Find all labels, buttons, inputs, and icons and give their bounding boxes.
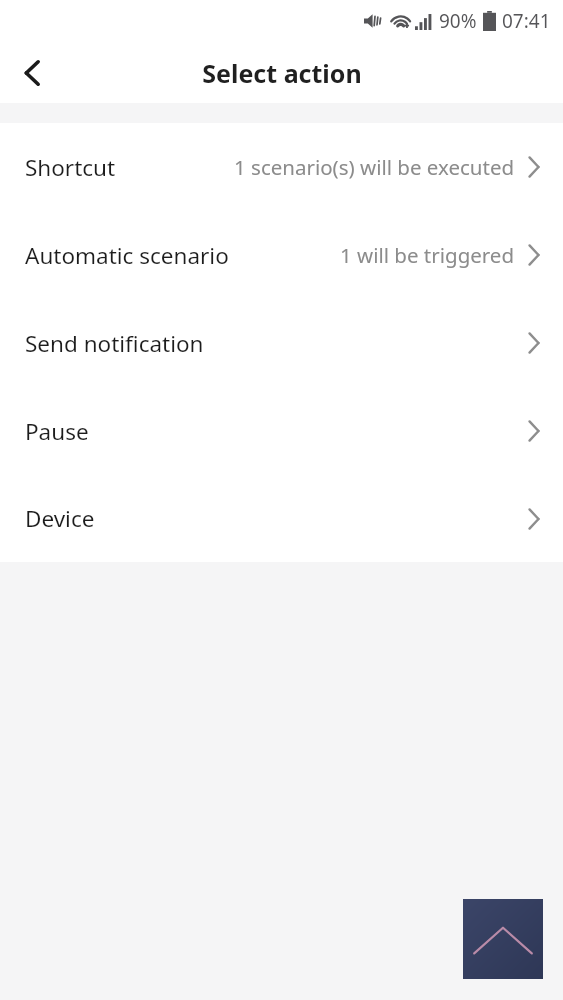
staticText: 1 scenario(s) will be executed — [234, 153, 515, 181]
staticText: 1 will be triggered — [340, 241, 515, 269]
staticText: Send notification — [25, 328, 204, 359]
button[interactable]: Navigate up — [463, 899, 543, 979]
button[interactable]: Back — [0, 42, 64, 103]
staticText: Pause — [25, 416, 89, 447]
button[interactable]: Automatic scenario — [0, 211, 563, 299]
staticText: Shortcut — [25, 152, 116, 183]
button[interactable]: Send notification — [0, 299, 563, 387]
button[interactable]: Pause — [0, 387, 563, 475]
staticText: 90% — [439, 8, 477, 34]
button[interactable]: Device — [0, 475, 563, 562]
button[interactable]: Shortcut — [0, 123, 563, 211]
staticText: Automatic scenario — [25, 240, 229, 271]
staticText: Select action — [202, 56, 362, 90]
staticText: Device — [25, 503, 95, 534]
staticText: 07:41 — [502, 8, 551, 34]
